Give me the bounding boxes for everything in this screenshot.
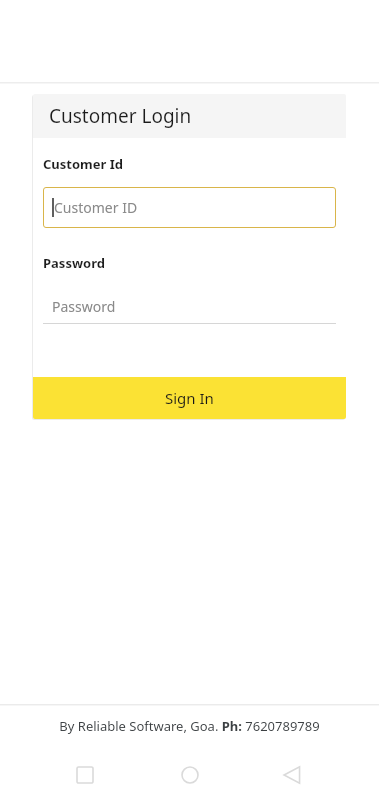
staticText: Customer Id — [43, 155, 123, 173]
button[interactable]: Recents — [63, 753, 107, 797]
button[interactable]: Back — [270, 753, 314, 797]
staticText: Password — [52, 297, 116, 316]
button[interactable]: Customer ID — [43, 187, 336, 228]
button[interactable]: Home — [168, 753, 212, 797]
staticText: Sign In — [165, 388, 214, 408]
button[interactable]: Sign In — [33, 377, 346, 419]
staticText: Password — [43, 254, 105, 272]
staticText: Customer ID — [54, 198, 138, 217]
staticText: By Reliable Software, Goa. Ph: 762078978… — [59, 717, 320, 735]
button[interactable]: Password — [43, 290, 336, 324]
staticText: Customer Login — [49, 103, 192, 129]
